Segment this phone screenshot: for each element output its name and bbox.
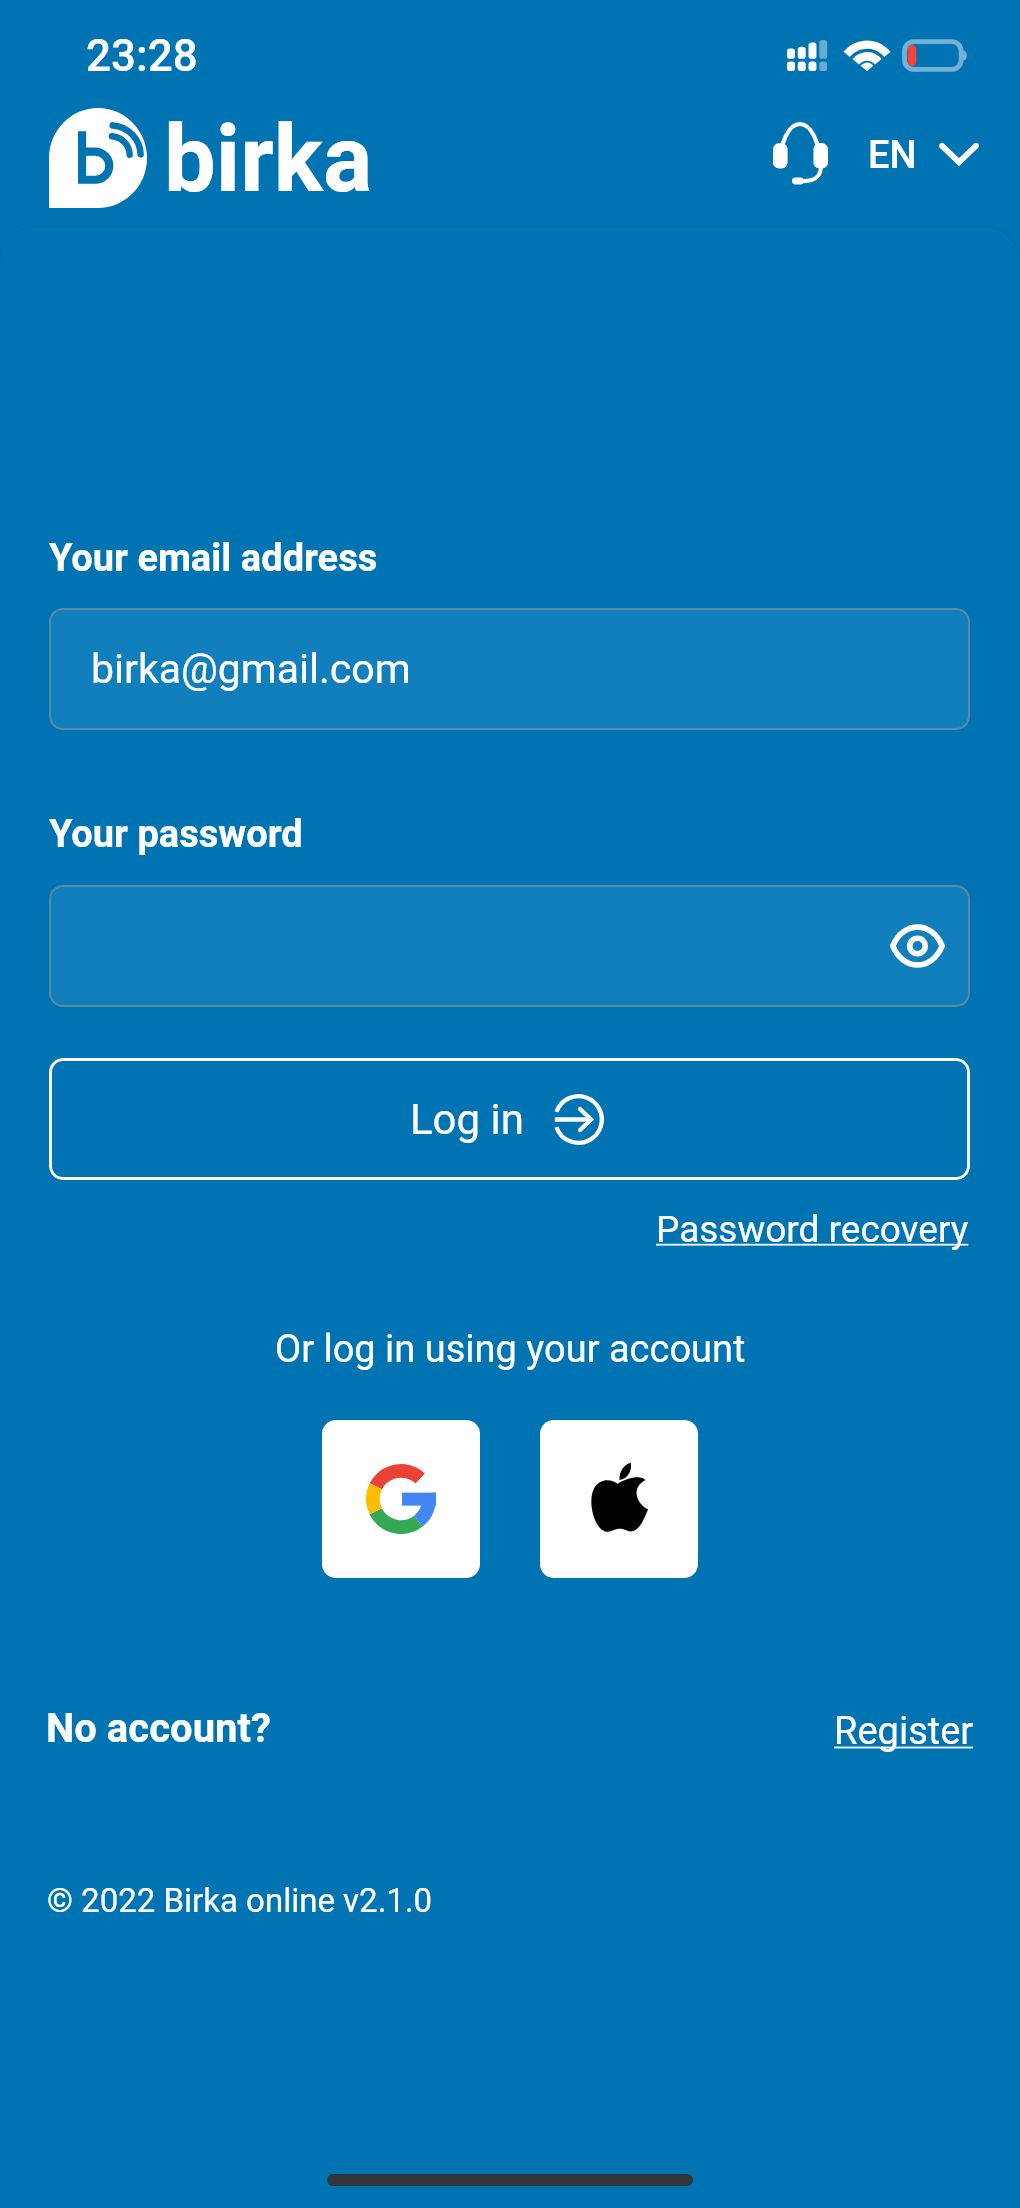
staticText: Register	[834, 1709, 974, 1754]
button[interactable]: Sign in with Apple	[540, 1420, 698, 1578]
button[interactable]: Support	[773, 122, 828, 182]
staticText: No account?	[46, 1705, 271, 1752]
staticText: birka@gmail.com	[91, 645, 411, 693]
button[interactable]: Show password	[881, 910, 953, 982]
staticText: birka	[164, 106, 373, 214]
button[interactable]: Password recovery	[650, 1196, 975, 1263]
staticText: EN	[868, 133, 917, 178]
button[interactable]: EN	[868, 133, 979, 178]
staticText: Your password	[49, 812, 303, 857]
staticText: Log in	[410, 1095, 524, 1144]
button[interactable]: birka@gmail.com	[49, 608, 970, 730]
staticText: Password recovery	[656, 1208, 969, 1251]
staticText: Or log in using your account	[275, 1327, 746, 1372]
button[interactable]: Log in	[49, 1058, 970, 1180]
staticText: 23:28	[86, 30, 198, 82]
button[interactable]: Show password	[49, 885, 970, 1007]
button[interactable]: Sign in with Google	[322, 1420, 480, 1578]
staticText: © 2022 Birka online v2.1.0	[47, 1881, 433, 1920]
staticText: Your email address	[49, 536, 378, 581]
button[interactable]: Register	[828, 1697, 980, 1766]
